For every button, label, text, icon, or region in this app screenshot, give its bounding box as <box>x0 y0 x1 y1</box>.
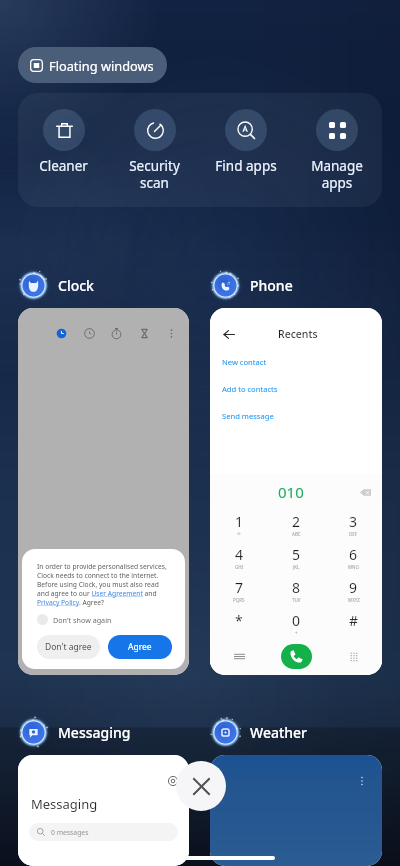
staticText: WXYZ <box>348 597 360 603</box>
staticText: Messaging <box>31 795 98 813</box>
staticText: Send message <box>222 411 274 421</box>
staticText: 0 messages <box>51 828 89 837</box>
button[interactable]: Manage apps <box>291 93 382 192</box>
staticText: 4 <box>235 545 244 564</box>
button[interactable]: 5 <box>268 545 325 570</box>
staticText: 2 <box>292 512 301 531</box>
button[interactable]: Call <box>281 644 312 669</box>
staticText: Don't agree <box>45 641 92 653</box>
button[interactable]: 1 <box>210 512 268 536</box>
button[interactable]: Close all <box>176 761 226 811</box>
button[interactable]: Cleaner <box>18 93 109 175</box>
button[interactable]: 9 <box>325 578 382 603</box>
button[interactable]: # <box>325 611 382 630</box>
button[interactable]: 7 <box>210 578 268 603</box>
staticText: * <box>235 611 243 630</box>
staticText: Weather <box>250 723 308 742</box>
staticText: Find apps <box>215 157 277 175</box>
staticText: ABC <box>292 531 301 537</box>
button[interactable]: 4 <box>210 545 268 570</box>
staticText: Phone <box>250 276 293 295</box>
button[interactable]: 3 <box>325 512 382 537</box>
button[interactable]: 0 messages <box>29 823 178 841</box>
staticText: 5 <box>292 545 301 564</box>
staticText: Manage apps <box>311 157 363 192</box>
staticText: 6 <box>349 545 358 564</box>
staticText: New contact <box>222 357 267 367</box>
button[interactable]: 2 <box>268 512 325 537</box>
staticText: Don't show again <box>53 615 112 625</box>
staticText: In order to provide personalised service… <box>37 562 172 607</box>
staticText: Clock <box>58 276 94 295</box>
button[interactable]: 6 <box>325 545 382 570</box>
staticText: 010 <box>278 482 304 502</box>
staticText: # <box>349 611 359 630</box>
button[interactable]: Floating windows <box>18 47 167 83</box>
button[interactable] <box>210 755 382 866</box>
staticText: 0 <box>292 611 301 630</box>
staticText: TUV <box>292 597 301 603</box>
staticText: Security scan <box>129 157 180 192</box>
button[interactable]: Recents <box>210 308 382 675</box>
staticText: ∞ <box>237 531 241 536</box>
button[interactable]: In order to provide personalised service… <box>18 308 189 675</box>
staticText: Cleaner <box>39 157 88 175</box>
staticText: MNO <box>348 564 360 570</box>
staticText: 8 <box>292 578 301 597</box>
staticText: JKL <box>293 564 300 570</box>
staticText: 7 <box>235 578 244 597</box>
button[interactable]: Find apps <box>200 93 291 175</box>
button[interactable]: Don't agree <box>37 635 100 659</box>
staticText: Messaging <box>58 723 131 742</box>
button[interactable]: * <box>210 611 268 630</box>
staticText: 9 <box>349 578 358 597</box>
button[interactable]: Agree <box>108 635 172 659</box>
staticText: Floating windows <box>49 57 154 74</box>
staticText: DEF <box>349 531 358 537</box>
staticText: 3 <box>349 512 358 531</box>
staticText: 1 <box>235 512 244 531</box>
button[interactable]: Security scan <box>109 93 200 192</box>
button[interactable]: 8 <box>268 578 325 603</box>
staticText: PQRS <box>233 597 245 603</box>
staticText: + <box>295 630 298 636</box>
staticText: Add to contacts <box>222 384 278 394</box>
button[interactable]: Messaging <box>18 755 189 866</box>
button[interactable]: 0 <box>268 611 325 636</box>
staticText: Agree <box>128 641 152 653</box>
staticText: GHI <box>235 564 244 570</box>
staticText: Recents <box>278 327 318 341</box>
